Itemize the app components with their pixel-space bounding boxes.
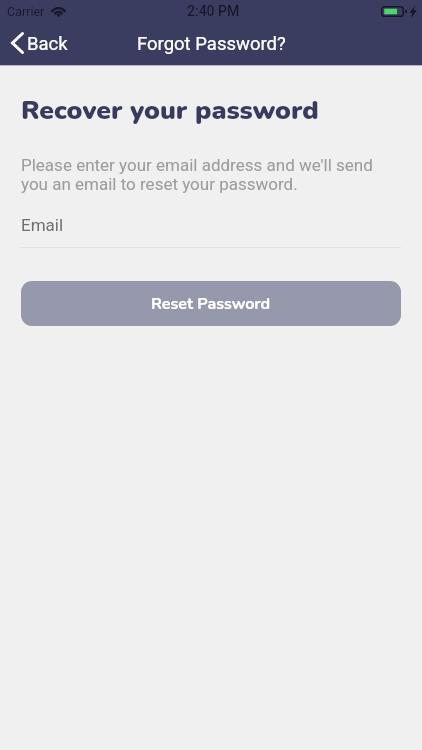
staticText: Please enter your email address and we'l…: [21, 155, 392, 195]
staticText: Back: [27, 33, 68, 55]
staticText: 2:40 PM: [187, 3, 240, 19]
button[interactable]: Back: [0, 28, 78, 60]
staticText: Email: [21, 215, 64, 235]
button[interactable]: Reset Password: [21, 281, 401, 326]
staticText: Forgot Password?: [137, 33, 286, 55]
staticText: Reset Password: [151, 293, 271, 315]
staticText: Carrier: [7, 4, 45, 19]
staticText: Recover your password: [21, 92, 319, 128]
